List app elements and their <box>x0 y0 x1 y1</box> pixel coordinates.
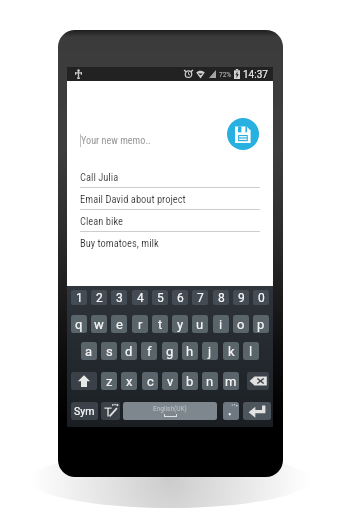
button[interactable]: s <box>101 342 117 360</box>
staticText: i <box>219 317 223 332</box>
staticText: 3 <box>116 291 123 305</box>
button[interactable]: m <box>223 372 239 390</box>
button[interactable]: 1 <box>71 290 87 305</box>
staticText: g <box>166 344 174 359</box>
button[interactable]: Period <box>223 402 239 420</box>
staticText: v <box>167 374 174 389</box>
staticText: 8 <box>218 291 225 305</box>
staticText: s <box>106 344 113 359</box>
staticText: l <box>249 344 253 359</box>
button[interactable]: b <box>182 372 198 390</box>
staticText: 5 <box>157 291 164 305</box>
staticText: Your new memo.. <box>81 135 151 147</box>
staticText: r <box>138 317 143 332</box>
staticText: b <box>186 374 194 389</box>
button[interactable]: c <box>142 372 158 390</box>
staticText: j <box>208 344 212 359</box>
button[interactable]: Clean bike <box>80 210 260 232</box>
staticText: h <box>186 344 194 359</box>
button[interactable]: 6 <box>172 290 188 305</box>
button[interactable]: l <box>243 342 259 360</box>
button[interactable]: Email David about project <box>80 188 260 210</box>
staticText: e <box>116 317 123 332</box>
button[interactable]: a <box>81 342 97 360</box>
staticText: a <box>85 344 93 359</box>
button[interactable]: e <box>111 315 127 333</box>
button[interactable]: Enter <box>243 402 271 420</box>
staticText: w <box>94 317 104 332</box>
staticText: 4 <box>137 291 144 305</box>
button[interactable]: h <box>182 342 198 360</box>
button[interactable]: Backspace <box>247 372 269 390</box>
staticText: 14:37 <box>243 69 268 81</box>
staticText: 72% <box>219 71 232 79</box>
button[interactable]: 9 <box>233 290 249 305</box>
staticText: k <box>228 344 235 359</box>
staticText: Email David about project <box>80 193 186 205</box>
staticText: f <box>147 344 152 359</box>
button[interactable]: z <box>101 372 117 390</box>
staticText: Call Julia <box>80 171 119 183</box>
button[interactable]: i <box>213 315 229 333</box>
staticText: 0 <box>258 291 265 305</box>
button[interactable]: k <box>223 342 239 360</box>
button[interactable]: v <box>162 372 178 390</box>
staticText: y <box>177 317 184 332</box>
staticText: 7 <box>197 291 204 305</box>
staticText: t <box>158 317 163 332</box>
button[interactable]: 0 <box>253 290 269 305</box>
button[interactable]: Sym <box>71 402 98 420</box>
button[interactable]: w <box>91 315 107 333</box>
button[interactable]: Save memo <box>227 118 259 150</box>
staticText: c <box>147 374 154 389</box>
button[interactable]: Shift <box>71 372 97 390</box>
button[interactable]: Change input method <box>101 402 120 420</box>
staticText: x <box>126 374 133 389</box>
button[interactable]: j <box>202 342 218 360</box>
button[interactable]: n <box>202 372 218 390</box>
button[interactable]: 4 <box>132 290 148 305</box>
button[interactable]: r <box>132 315 148 333</box>
staticText: o <box>237 317 245 332</box>
button[interactable]: t <box>152 315 168 333</box>
button[interactable]: 8 <box>213 290 229 305</box>
button[interactable]: y <box>172 315 188 333</box>
staticText: z <box>106 374 113 389</box>
staticText: 1 <box>76 291 83 305</box>
staticText: n <box>206 374 214 389</box>
staticText: English(UK) <box>153 405 187 413</box>
staticText: 9 <box>238 291 245 305</box>
staticText: 6 <box>177 291 184 305</box>
button[interactable]: 7 <box>192 290 208 305</box>
button[interactable]: 2 <box>91 290 107 305</box>
staticText: u <box>196 317 204 332</box>
button[interactable]: 3 <box>111 290 127 305</box>
staticText: q <box>75 317 83 332</box>
button[interactable]: Space <box>123 402 217 420</box>
button[interactable]: x <box>121 372 137 390</box>
staticText: d <box>125 344 133 359</box>
button[interactable]: g <box>162 342 178 360</box>
button[interactable]: 5 <box>152 290 168 305</box>
button[interactable]: Call Julia <box>80 166 260 188</box>
button[interactable]: u <box>192 315 208 333</box>
staticText: Clean bike <box>80 215 123 227</box>
button[interactable]: d <box>121 342 137 360</box>
staticText: m <box>225 374 237 389</box>
button[interactable]: p <box>253 315 269 333</box>
staticText: 2 <box>96 291 103 305</box>
staticText: Buy tomatoes, milk <box>80 237 159 249</box>
button[interactable]: q <box>71 315 87 333</box>
button[interactable]: o <box>233 315 249 333</box>
staticText: p <box>257 317 265 332</box>
button[interactable]: Buy tomatoes, milk <box>80 232 260 254</box>
button[interactable]: f <box>141 342 157 360</box>
staticText: Sym <box>74 405 95 417</box>
